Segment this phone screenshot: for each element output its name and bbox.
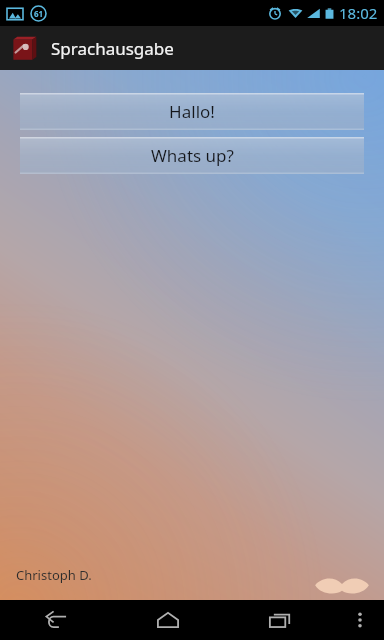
button[interactable]: Home [112, 600, 224, 640]
button[interactable]: Recent apps [224, 600, 336, 640]
button[interactable]: Back [0, 600, 112, 640]
staticText: 18:02 [339, 3, 378, 23]
staticText: Hallo! [169, 100, 215, 123]
button[interactable]: Hallo! [20, 93, 364, 130]
button[interactable]: More options [336, 600, 384, 640]
staticText: Whats up? [151, 144, 234, 167]
button[interactable]: Whats up? [20, 137, 364, 174]
staticText: Christoph D. [16, 566, 92, 584]
staticText: Sprachausgabe [51, 37, 174, 60]
staticText: 61 [34, 8, 44, 19]
